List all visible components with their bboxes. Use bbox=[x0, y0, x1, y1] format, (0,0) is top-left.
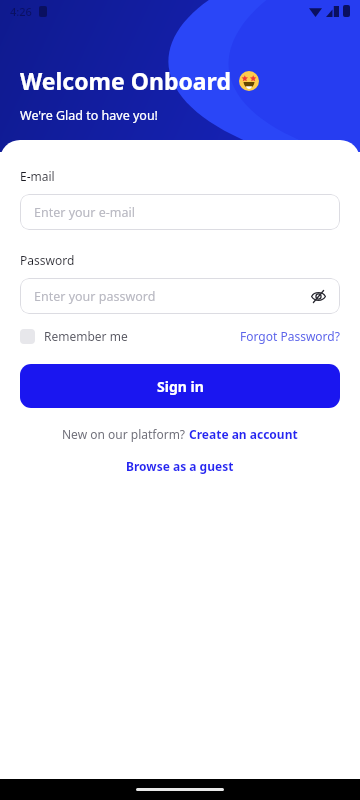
staticText: Forgot Password? bbox=[240, 328, 340, 344]
staticText: E-mail bbox=[20, 168, 55, 184]
staticText: Sign in bbox=[157, 377, 204, 396]
staticText: We're Glad to have you! bbox=[20, 107, 158, 124]
staticText: Enter your password bbox=[34, 288, 156, 305]
staticText: Password bbox=[20, 252, 75, 268]
button[interactable]: Create an account bbox=[189, 426, 298, 442]
button[interactable]: Sign in bbox=[20, 364, 340, 408]
button[interactable]: Enter your password bbox=[20, 278, 340, 314]
button[interactable]: Show password bbox=[306, 284, 330, 308]
staticText: New on our platform? bbox=[62, 426, 189, 442]
button[interactable]: Browse as a guest bbox=[126, 458, 234, 474]
button[interactable]: Remember me bbox=[20, 328, 128, 344]
staticText: Welcome Onboard bbox=[20, 65, 231, 96]
staticText: Create an account bbox=[189, 426, 298, 442]
staticText: Browse as a guest bbox=[126, 458, 234, 474]
button[interactable]: Forgot Password? bbox=[240, 328, 340, 344]
button[interactable]: Enter your e-mail bbox=[20, 194, 340, 230]
staticText: Enter your e-mail bbox=[34, 204, 135, 221]
staticText: 4:26 bbox=[10, 4, 32, 19]
staticText: Remember me bbox=[44, 328, 128, 344]
